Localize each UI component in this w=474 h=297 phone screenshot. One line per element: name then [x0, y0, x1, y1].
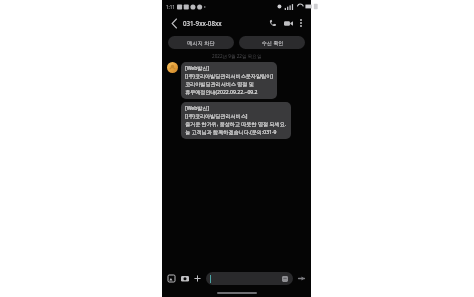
- button[interactable]: More options: [296, 18, 306, 28]
- staticText: 1:11: [166, 4, 175, 10]
- button[interactable]: Back: [167, 16, 181, 30]
- staticText: 휴무예정안내(2022.09.22.~09.2: [185, 89, 258, 96]
- button[interactable]: 수신 확인: [239, 36, 305, 49]
- button[interactable]: Emoji: [281, 275, 289, 283]
- button[interactable]: Add attachment: [192, 273, 203, 284]
- staticText: 031-9xx-08xx: [183, 19, 266, 27]
- staticText: 즐거운 한가위, 풍성하고 따뜻한 명절 되세요.: [185, 121, 287, 128]
- button[interactable]: Gallery: [166, 273, 177, 284]
- staticText: [Web발신]: [185, 105, 210, 112]
- button[interactable]: [Web발신]: [181, 62, 277, 99]
- staticText: 메시지 차단: [187, 39, 215, 46]
- staticText: 코리아빌딩관리서비스 명절 및: [185, 81, 254, 88]
- button[interactable]: Camera: [179, 273, 190, 284]
- button[interactable]: Emoji: [206, 272, 293, 285]
- button[interactable]: Video call: [281, 16, 295, 30]
- button[interactable]: Contact photo: [167, 62, 178, 73]
- staticText: 늘 고객님과 함께하겠습니다.(문의:031-9: [185, 129, 277, 136]
- staticText: [(주)코리아빌딩관리서비스문자알림이]: [185, 73, 273, 80]
- staticText: 수신 확인: [261, 39, 284, 46]
- button[interactable]: 메시지 차단: [168, 36, 234, 49]
- button[interactable]: Call: [266, 16, 280, 30]
- staticText: [(주)코리아빌딩관리서비스]: [185, 113, 248, 120]
- button[interactable]: [Web발신]: [181, 102, 291, 139]
- staticText: 2022년 9월 22일 목요일: [212, 53, 262, 59]
- button[interactable]: Send: [296, 273, 307, 284]
- staticText: [Web발신]: [185, 65, 210, 72]
